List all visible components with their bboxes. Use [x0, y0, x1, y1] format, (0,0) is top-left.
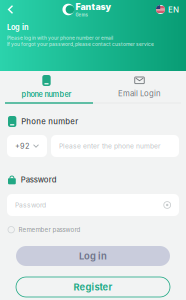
button[interactable]: Back — [3, 0, 18, 19]
staticText: Log in — [7, 23, 29, 32]
staticText: +92 — [15, 142, 29, 150]
staticText: Remember password — [18, 226, 80, 233]
staticText: phone number — [21, 90, 71, 99]
staticText: If you forgot your password, please cont… — [7, 41, 154, 47]
staticText: Gems — [76, 12, 88, 17]
staticText: Register — [73, 281, 112, 293]
staticText: EN — [168, 5, 179, 14]
button[interactable]: Language: English — [156, 5, 179, 14]
staticText: Phone number — [21, 117, 78, 126]
staticText: Email Login — [118, 89, 161, 98]
button[interactable]: Log in — [16, 246, 170, 266]
staticText: Password — [21, 175, 57, 184]
staticText: Please enter the phone number — [59, 142, 161, 150]
button[interactable]: Register — [16, 277, 170, 297]
button[interactable]: Show password — [163, 201, 171, 209]
staticText: Fantasy — [76, 2, 112, 12]
button[interactable]: Email Login — [93, 71, 186, 101]
staticText: Password — [15, 201, 46, 209]
button[interactable]: phone number — [0, 71, 93, 101]
button[interactable]: Remember password — [0, 218, 186, 238]
button[interactable]: +92 — [7, 135, 47, 157]
staticText: Log in — [79, 250, 107, 262]
staticText: Please log in with your phone number or … — [7, 35, 113, 41]
